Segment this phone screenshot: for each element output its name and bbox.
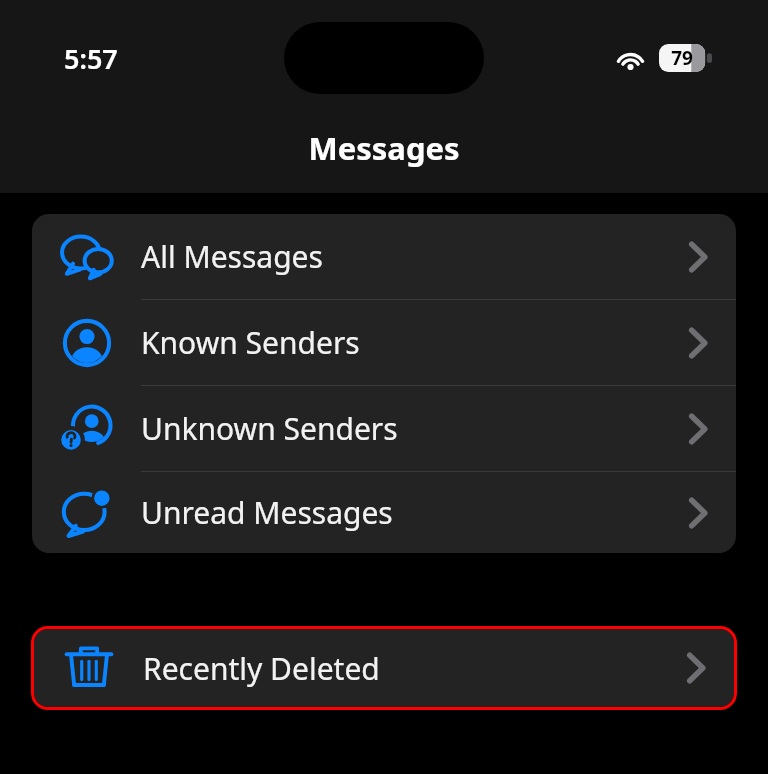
staticText: 79 — [671, 45, 693, 71]
staticText: Unknown Senders — [141, 408, 660, 449]
button[interactable]: Recently Deleted — [34, 629, 734, 707]
other: Known Senders — [59, 315, 115, 371]
staticText: All Messages — [141, 236, 660, 277]
other: All Messages — [59, 229, 115, 285]
button[interactable]: Known Senders — [32, 300, 736, 385]
staticText: Recently Deleted — [143, 648, 658, 689]
staticText: 5:57 — [64, 40, 118, 77]
staticText: Known Senders — [141, 322, 660, 363]
other: Unknown Senders — [59, 401, 115, 457]
staticText: Messages — [0, 127, 768, 169]
staticText: Unread Messages — [141, 492, 660, 533]
other: Unread Messages — [59, 485, 115, 541]
button[interactable]: Unknown Senders — [32, 386, 736, 471]
other: Recently Deleted — [61, 640, 117, 696]
button[interactable]: Unread Messages — [32, 472, 736, 553]
button[interactable]: All Messages — [32, 214, 736, 299]
